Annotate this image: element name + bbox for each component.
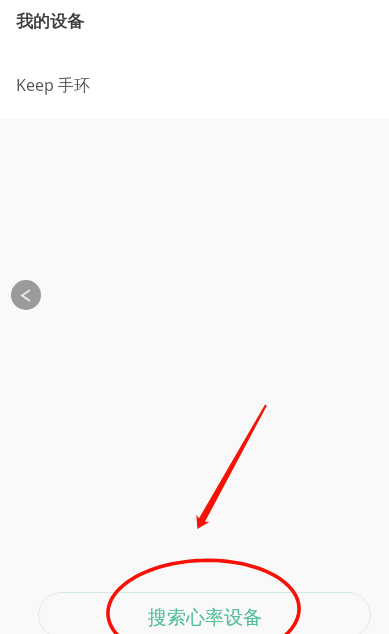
staticText: 我的设备 [16, 11, 84, 32]
button[interactable]: Back [11, 280, 41, 310]
staticText: Keep 手环 [16, 74, 90, 96]
button[interactable]: 搜索心率设备 [38, 592, 371, 634]
staticText: 搜索心率设备 [148, 606, 262, 630]
